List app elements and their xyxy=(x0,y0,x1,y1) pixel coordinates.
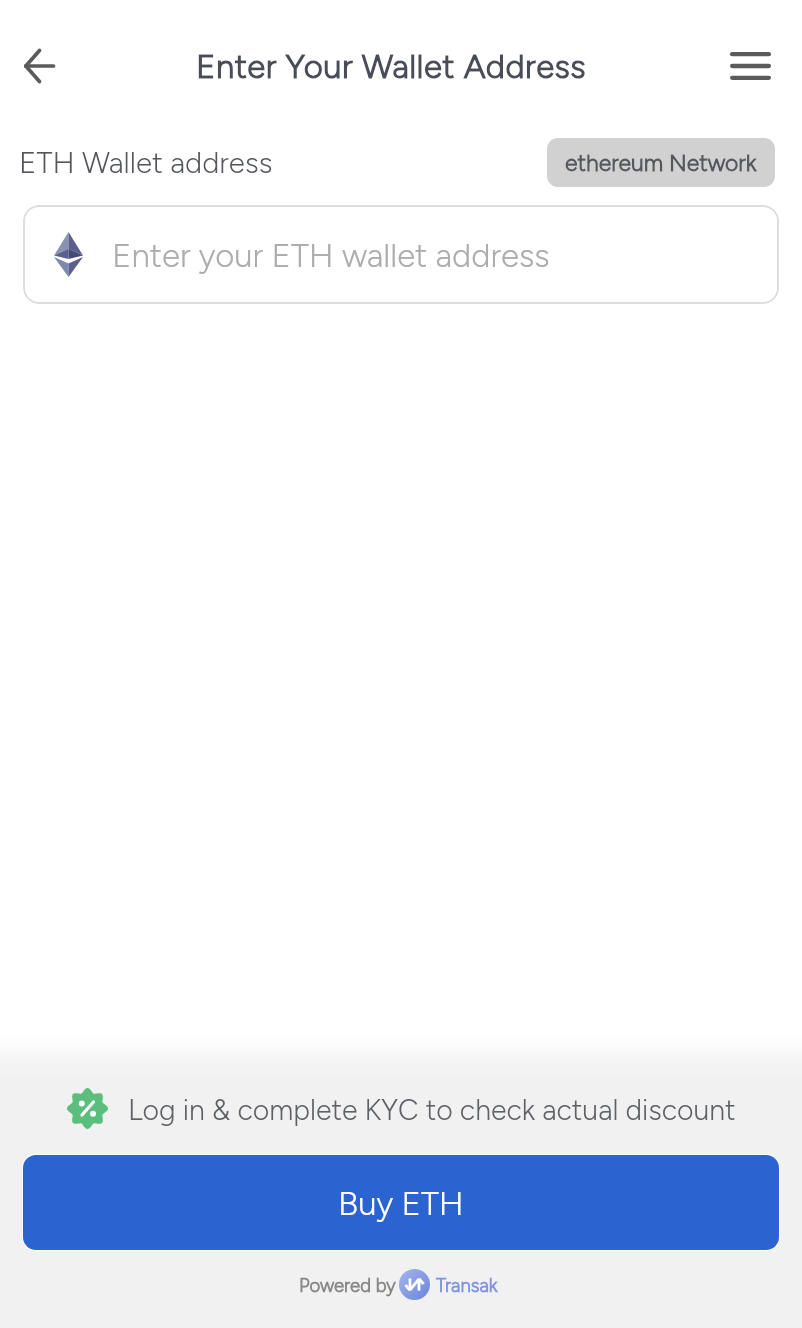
button[interactable]: Enter your ETH wallet address xyxy=(23,205,779,304)
staticText: Log in & complete KYC to check actual di… xyxy=(128,1093,736,1127)
staticText: Powered by xyxy=(299,1274,396,1296)
button[interactable]: Menu xyxy=(720,36,780,96)
staticText: ETH Wallet address xyxy=(19,145,273,180)
staticText: Enter Your Wallet Address xyxy=(196,47,587,87)
staticText: Buy ETH xyxy=(338,1184,464,1224)
button[interactable]: Back xyxy=(9,36,69,96)
staticText: Transak xyxy=(436,1274,498,1296)
button[interactable]: Buy ETH xyxy=(23,1155,779,1250)
staticText: Enter your ETH wallet address xyxy=(112,236,550,276)
button[interactable]: ethereum Network xyxy=(547,138,775,187)
staticText: ethereum Network xyxy=(565,149,757,177)
